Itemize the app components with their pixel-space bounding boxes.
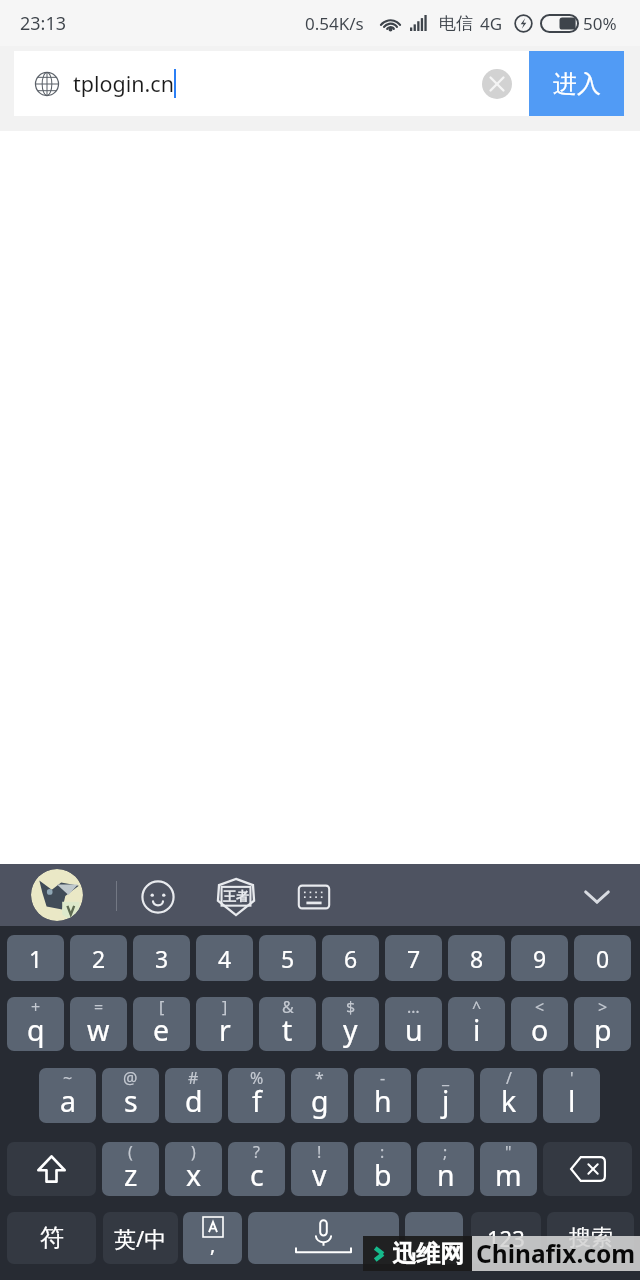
button[interactable]: ~ [39, 1068, 96, 1123]
staticText: / [506, 1068, 512, 1089]
staticText: & [282, 997, 294, 1018]
button[interactable]: 4 [196, 935, 253, 981]
button[interactable]: = [70, 997, 127, 1051]
staticText: @ [123, 1068, 138, 1089]
button[interactable]: 符 [7, 1212, 96, 1264]
staticText: a [60, 1082, 76, 1121]
button[interactable]: % [228, 1068, 285, 1123]
button[interactable]: Space, voice input [248, 1212, 399, 1264]
button[interactable]: Game stickers [215, 876, 257, 918]
staticText: e [153, 1011, 170, 1050]
button[interactable]: 7 [385, 935, 442, 981]
button[interactable]: ; [417, 1142, 474, 1196]
staticText: > [598, 997, 608, 1018]
button[interactable]: - [354, 1068, 411, 1123]
staticText: * [315, 1068, 324, 1089]
staticText: x [186, 1156, 202, 1195]
staticText: 23:13 [20, 11, 67, 36]
staticText: 4G [480, 12, 503, 35]
staticText: 6 [344, 943, 358, 974]
button[interactable]: " [480, 1142, 537, 1196]
staticText: 王者 [223, 888, 249, 904]
button[interactable]: ' [543, 1068, 600, 1123]
staticText: 符 [40, 1223, 64, 1253]
staticText: _ [442, 1068, 450, 1089]
button[interactable]: Clear [482, 69, 512, 99]
staticText: n [437, 1156, 455, 1195]
staticText: : [380, 1142, 385, 1163]
button[interactable]: 进入 [529, 51, 624, 116]
staticText: v [312, 1156, 327, 1195]
button[interactable]: 2 [70, 935, 127, 981]
staticText: 。 [423, 1224, 445, 1252]
button[interactable]: Avatar [31, 869, 83, 921]
staticText: Chinafix.com [476, 1237, 636, 1270]
staticText: l [568, 1082, 576, 1121]
button[interactable]: 1 [7, 935, 64, 981]
button[interactable]: : [354, 1142, 411, 1196]
staticText: 0 [596, 943, 610, 974]
staticText: w [87, 1011, 110, 1050]
staticText: ! [317, 1142, 322, 1163]
button[interactable]: 0 [574, 935, 631, 981]
button[interactable]: < [511, 997, 568, 1051]
button[interactable]: 搜索 [547, 1212, 634, 1264]
staticText: 进入 [553, 69, 601, 99]
staticText: 123 [487, 1223, 525, 1253]
button[interactable]: tplogin.cn [14, 51, 529, 116]
staticText: r [219, 1011, 231, 1050]
button[interactable]: # [165, 1068, 222, 1123]
button[interactable]: ) [165, 1142, 222, 1196]
button[interactable]: 3 [133, 935, 190, 981]
staticText: 7 [407, 943, 421, 974]
staticText: = [94, 997, 104, 1018]
button[interactable]: 。 [405, 1212, 463, 1264]
staticText: g [311, 1082, 329, 1121]
button[interactable]: 5 [259, 935, 316, 981]
button[interactable]: > [574, 997, 631, 1051]
button[interactable]: [ [133, 997, 190, 1051]
button[interactable]: 6 [322, 935, 379, 981]
button[interactable]: 8 [448, 935, 505, 981]
button[interactable]: ! [291, 1142, 348, 1196]
button[interactable]: $ [322, 997, 379, 1051]
staticText: " [505, 1142, 512, 1163]
button[interactable]: @ [102, 1068, 159, 1123]
button[interactable]: * [291, 1068, 348, 1123]
button[interactable]: Keyboard layout [295, 878, 333, 916]
button[interactable]: Emoji [139, 878, 177, 916]
button[interactable]: shift [7, 1142, 96, 1196]
staticText: 电信 [439, 13, 473, 34]
staticText: # [188, 1068, 199, 1089]
staticText: j [442, 1082, 450, 1121]
button[interactable]: 9 [511, 935, 568, 981]
staticText: s [124, 1082, 138, 1121]
staticText: k [501, 1082, 517, 1121]
staticText: d [185, 1082, 203, 1121]
button[interactable]: + [7, 997, 64, 1051]
staticText: ] [222, 997, 228, 1018]
button[interactable]: 123 [471, 1212, 541, 1264]
button[interactable]: ( [102, 1142, 159, 1196]
staticText: t [282, 1011, 293, 1050]
staticText: y [343, 1011, 358, 1050]
staticText: ? [253, 1142, 260, 1163]
staticText: … [407, 997, 420, 1018]
staticText: i [473, 1011, 481, 1050]
button[interactable]: ? [228, 1142, 285, 1196]
button[interactable]: ] [196, 997, 253, 1051]
button[interactable]: , [183, 1212, 242, 1264]
button[interactable]: / [480, 1068, 537, 1123]
staticText: $ [346, 997, 356, 1018]
button[interactable]: _ [417, 1068, 474, 1123]
staticText: 迅维网 [392, 1239, 464, 1269]
staticText: - [380, 1068, 386, 1089]
button[interactable]: … [385, 997, 442, 1051]
staticText: 5 [281, 943, 295, 974]
button[interactable]: & [259, 997, 316, 1051]
button[interactable]: back [543, 1142, 632, 1196]
staticText: 8 [470, 943, 484, 974]
button[interactable]: ^ [448, 997, 505, 1051]
button[interactable]: 英/中 [103, 1212, 178, 1264]
button[interactable]: Hide keyboard [578, 878, 616, 916]
